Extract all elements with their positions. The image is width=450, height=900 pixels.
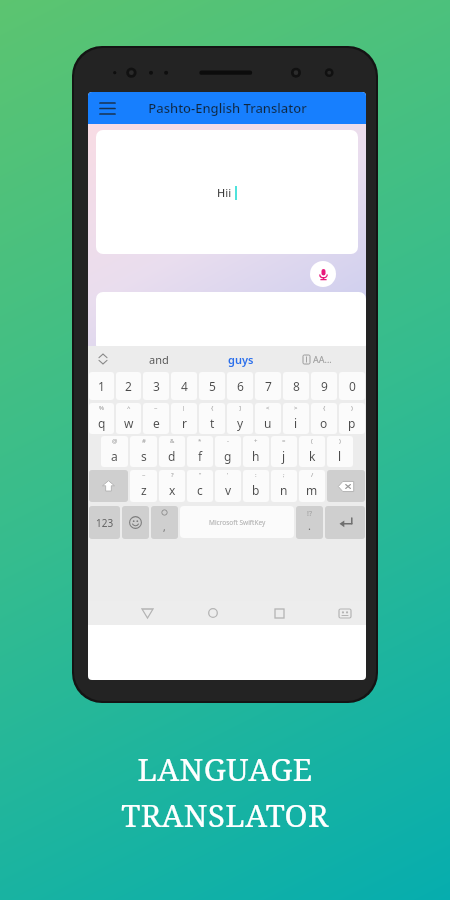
staticText: { — [211, 404, 214, 412]
staticText: u — [264, 415, 272, 431]
staticText: { — [323, 404, 326, 412]
staticText: n — [280, 482, 288, 498]
button[interactable]: % — [89, 403, 114, 434]
button[interactable]: ) — [339, 403, 365, 434]
staticText: = — [282, 437, 286, 445]
staticText: ( — [311, 437, 313, 445]
staticText: c — [197, 482, 203, 498]
staticText: - — [227, 437, 229, 445]
button[interactable]: Emoji — [122, 506, 149, 539]
button[interactable]: ) — [327, 436, 353, 467]
button[interactable]: Backspace — [327, 470, 365, 502]
button[interactable]: Enter — [325, 506, 365, 539]
button[interactable]: : — [243, 470, 269, 502]
button[interactable]: Home — [200, 601, 226, 625]
button[interactable]: 0 — [339, 372, 365, 400]
button[interactable]: ' — [215, 470, 241, 502]
button[interactable]: Expand suggestions — [88, 346, 118, 372]
staticText: @ — [112, 437, 118, 445]
staticText: o — [320, 415, 328, 431]
button[interactable] — [96, 292, 366, 352]
staticText: ? — [171, 471, 174, 479]
button[interactable]: and — [118, 352, 200, 367]
button[interactable]: { — [311, 403, 337, 434]
staticText: guys — [228, 352, 254, 367]
button[interactable]: 2 — [116, 372, 141, 400]
staticText: b — [252, 482, 260, 498]
staticText: !? — [307, 509, 312, 519]
button[interactable]: 6 — [227, 372, 253, 400]
staticText: # — [142, 437, 146, 445]
staticText: Hii — [217, 185, 232, 200]
button[interactable]: " — [187, 470, 213, 502]
button[interactable]: Speak to translate — [310, 261, 336, 287]
button[interactable]: 5 — [199, 372, 225, 400]
button[interactable]: | — [171, 403, 197, 434]
button[interactable]: Back — [134, 601, 160, 625]
staticText: 2 — [125, 378, 132, 394]
button[interactable]: ~ — [130, 470, 157, 502]
staticText: s — [141, 448, 147, 464]
button[interactable]: ; — [271, 470, 297, 502]
staticText: ; — [283, 471, 285, 479]
staticText: 0 — [349, 378, 356, 394]
button[interactable]: / — [299, 470, 325, 502]
button[interactable]: 123 — [89, 506, 120, 539]
button[interactable]: Comma and settings — [151, 506, 178, 539]
button[interactable]: 4 — [171, 372, 197, 400]
staticText: f — [198, 448, 203, 464]
staticText: + — [254, 437, 258, 445]
staticText: v — [225, 482, 232, 498]
staticText: & — [170, 437, 175, 445]
button[interactable]: < — [255, 403, 281, 434]
button[interactable]: > — [283, 403, 309, 434]
button[interactable]: & — [159, 436, 185, 467]
staticText: 1 — [98, 378, 105, 394]
staticText: TRANSLATOR — [121, 794, 329, 836]
staticText: d — [168, 448, 176, 464]
staticText: y — [237, 415, 244, 431]
button[interactable]: Period — [296, 506, 323, 539]
button[interactable]: 1 — [89, 372, 114, 400]
button[interactable]: More suggestion options — [282, 353, 352, 365]
button[interactable]: 3 — [143, 372, 169, 400]
button[interactable]: Recent apps — [266, 601, 292, 625]
button[interactable]: Shift — [89, 470, 128, 502]
button[interactable]: 9 — [311, 372, 337, 400]
button[interactable]: Switch keyboard — [332, 601, 358, 625]
button[interactable]: { — [199, 403, 225, 434]
staticText: 123 — [96, 516, 114, 530]
button[interactable]: 8 — [283, 372, 309, 400]
button[interactable]: ( — [299, 436, 325, 467]
staticText: k — [309, 448, 316, 464]
staticText: % — [99, 404, 104, 412]
staticText: > — [294, 404, 298, 412]
button[interactable]: ^ — [116, 403, 141, 434]
button[interactable]: Space — [180, 506, 294, 538]
button[interactable]: - — [215, 436, 241, 467]
button[interactable]: + — [243, 436, 269, 467]
button[interactable]: * — [187, 436, 213, 467]
button[interactable]: Open navigation menu — [94, 95, 120, 121]
staticText: / — [311, 471, 314, 479]
button[interactable]: ] — [227, 403, 253, 434]
staticText: i — [294, 415, 298, 431]
button[interactable]: ~ — [143, 403, 169, 434]
staticText: ] — [239, 404, 241, 412]
button[interactable]: Hii — [96, 130, 358, 254]
staticText: m — [306, 482, 318, 498]
staticText: 6 — [237, 378, 244, 394]
button[interactable]: 7 — [255, 372, 281, 400]
staticText: Pashto-English Translator — [148, 99, 307, 117]
staticText: AA... — [313, 353, 332, 365]
staticText: l — [338, 448, 342, 464]
button[interactable]: # — [130, 436, 157, 467]
staticText: " — [199, 471, 202, 479]
staticText: . — [308, 518, 311, 533]
button[interactable]: guys — [200, 352, 282, 367]
button[interactable]: = — [271, 436, 297, 467]
button[interactable]: ? — [159, 470, 185, 502]
staticText: a — [111, 448, 118, 464]
button[interactable]: @ — [101, 436, 128, 467]
staticText: 4 — [181, 378, 188, 394]
